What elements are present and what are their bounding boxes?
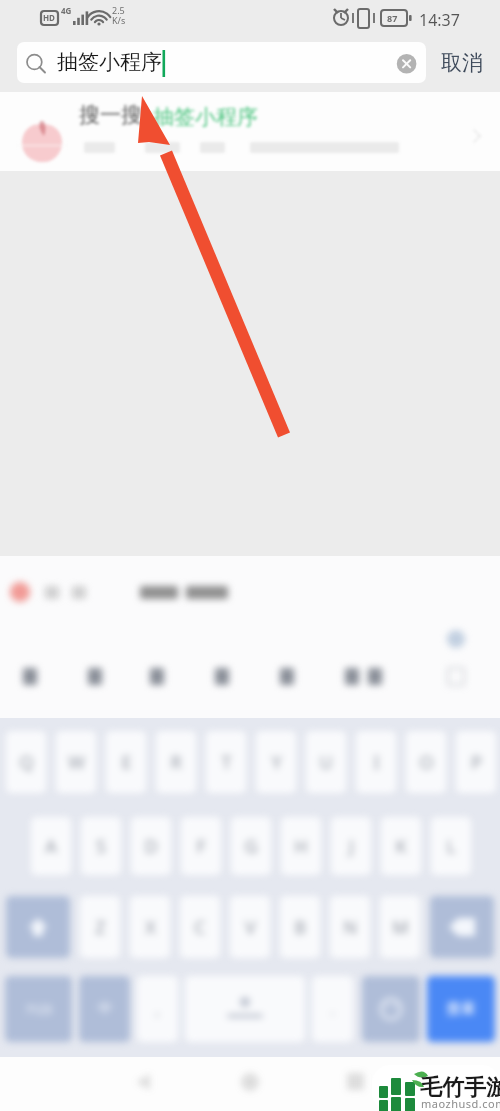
staticText: X — [145, 915, 156, 940]
button[interactable]: T — [206, 731, 246, 793]
button[interactable]: 取消 — [441, 50, 483, 76]
button[interactable]: P — [456, 731, 496, 793]
staticText: B — [294, 915, 306, 940]
staticText: 2.5 K/s — [112, 4, 126, 26]
staticText: R — [170, 750, 182, 775]
button[interactable]: H — [281, 817, 321, 875]
button[interactable]: Z — [80, 896, 120, 958]
staticText: Z — [95, 915, 106, 940]
button[interactable]: S — [81, 817, 121, 875]
button[interactable]: M — [380, 896, 420, 958]
staticText: Q — [19, 750, 34, 775]
staticText: G — [244, 834, 258, 859]
button[interactable]: Y — [256, 731, 296, 793]
button[interactable]: , — [137, 976, 178, 1042]
button[interactable]: R — [156, 731, 196, 793]
button[interactable]: V — [230, 896, 270, 958]
button[interactable]: I — [356, 731, 396, 793]
button[interactable] — [0, 565, 500, 621]
button[interactable]: K — [381, 817, 421, 875]
button[interactable]: Delete — [430, 896, 494, 958]
button[interactable]: 中 — [79, 976, 130, 1042]
button[interactable]: Shift — [6, 896, 70, 958]
button[interactable]: E — [106, 731, 146, 793]
staticText: I — [373, 750, 380, 775]
button[interactable]: C — [180, 896, 220, 958]
staticText: 毛竹手游 — [420, 1074, 500, 1102]
button[interactable]: ?123 — [5, 976, 72, 1042]
staticText: V — [245, 915, 256, 940]
staticText: maozhusd.com — [421, 1096, 500, 1111]
button[interactable]: J — [331, 817, 371, 875]
staticText: P — [471, 750, 482, 775]
staticText: C — [194, 915, 206, 940]
staticText: Y — [271, 750, 282, 775]
button[interactable]: F — [181, 817, 221, 875]
staticText: J — [349, 834, 354, 859]
staticText: H — [294, 834, 308, 859]
staticText: M — [392, 915, 409, 940]
button[interactable]: O — [406, 731, 446, 793]
staticText: 87 — [387, 12, 398, 24]
staticText: F — [196, 834, 206, 859]
staticText: S — [96, 834, 106, 859]
button[interactable]: N — [330, 896, 370, 958]
staticText: 搜索 — [447, 1000, 475, 1018]
staticText: U — [319, 750, 333, 775]
staticText: 中 — [98, 1000, 112, 1018]
button[interactable]: L — [431, 817, 471, 875]
staticText: T — [221, 750, 232, 775]
staticText: W — [68, 750, 85, 775]
button[interactable]: 搜一搜 — [0, 92, 500, 171]
button[interactable]: Q — [6, 731, 46, 793]
staticText: 抽签小程序 — [57, 49, 162, 75]
staticText: O — [419, 750, 434, 775]
button[interactable]: Emoji — [362, 976, 420, 1042]
staticText: ?123 — [26, 1001, 52, 1017]
staticText: D — [144, 834, 158, 859]
staticText: K — [395, 834, 407, 859]
button[interactable]: X — [130, 896, 170, 958]
staticText: 搜一搜 — [79, 102, 142, 128]
button[interactable]: B — [280, 896, 320, 958]
staticText: 4G — [61, 5, 72, 16]
button[interactable]: . — [312, 976, 353, 1042]
staticText: 14:37 — [419, 9, 460, 31]
button[interactable] — [185, 976, 305, 1042]
button[interactable]: 搜索 — [427, 976, 495, 1042]
staticText: HD — [43, 12, 55, 23]
button[interactable]: U — [306, 731, 346, 793]
button[interactable]: G — [231, 817, 271, 875]
staticText: 抽签小程序 — [142, 102, 258, 131]
button[interactable]: W — [56, 731, 96, 793]
button[interactable]: A — [31, 817, 71, 875]
button[interactable]: D — [131, 817, 171, 875]
staticText: A — [45, 834, 57, 859]
staticText: E — [121, 750, 132, 775]
staticText: 取消 — [441, 50, 483, 76]
button[interactable] — [17, 42, 426, 83]
staticText: N — [343, 915, 357, 940]
staticText: L — [446, 834, 456, 859]
